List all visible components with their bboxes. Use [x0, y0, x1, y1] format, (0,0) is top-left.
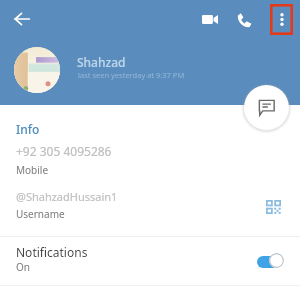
staticText: On — [16, 260, 30, 274]
button[interactable]: Notifications toggle — [257, 252, 285, 268]
staticText: +92 305 4095286 — [16, 143, 112, 159]
button[interactable]: +92 305 4095286 — [0, 138, 300, 180]
button[interactable]: Notifications — [0, 240, 300, 288]
button[interactable]: Call — [232, 8, 256, 32]
staticText: Shahzad — [77, 54, 126, 70]
button[interactable]: Show QR code — [263, 197, 283, 217]
staticText: Notifications — [16, 244, 88, 260]
button[interactable]: @ShahzadHussain1 — [0, 185, 300, 227]
staticText: last seen yesterday at 9:37 PM — [78, 70, 185, 80]
staticText: Username — [16, 207, 65, 221]
staticText: Mobile — [16, 163, 49, 177]
button[interactable]: More options — [270, 4, 293, 35]
staticText: Info — [16, 121, 40, 137]
staticText: @ShahzadHussain1 — [16, 189, 118, 204]
button[interactable]: Video call — [198, 7, 222, 31]
button[interactable]: Back — [9, 6, 35, 32]
button[interactable]: Send message — [244, 85, 289, 130]
